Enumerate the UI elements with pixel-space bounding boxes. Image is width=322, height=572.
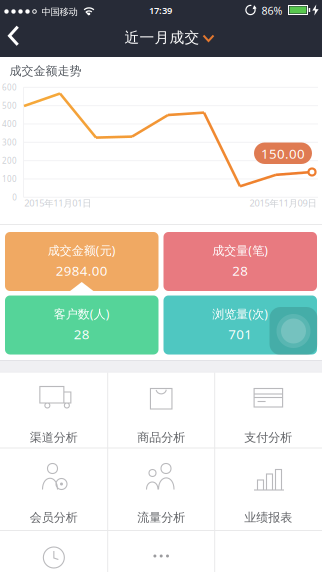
staticText: 600 [2,82,17,93]
staticText: 商品分析 [137,430,185,445]
staticText: 300 [2,137,17,148]
staticText: 中国移动 [41,6,77,18]
button[interactable]: 时段分析 [0,530,108,572]
staticText: 2015年11月01日 [24,197,91,209]
staticText: 28 [232,262,248,279]
button[interactable]: 支付分析 [215,370,322,448]
staticText: 成交金额(元) [48,242,116,258]
button[interactable]: 浏览量(次) [163,295,317,354]
staticText: 0 [12,192,17,203]
staticText: 成交量(笔) [212,242,268,258]
button[interactable]: 渠道分析 [0,370,108,448]
staticText: 渠道分析 [30,430,78,445]
button[interactable]: 商品分析 [108,370,215,448]
staticText: 业绩报表 [244,510,292,525]
staticText: 701 [228,325,252,343]
button[interactable]: 业绩报表 [215,448,322,530]
staticText: 400 [2,119,17,129]
button[interactable]: 客户数(人) [5,295,158,354]
staticText: 200 [2,155,17,166]
staticText: 会员分析 [30,510,78,525]
staticText: 客户数(人) [54,306,110,322]
staticText: 86% [261,3,282,18]
button[interactable]: 会员分析 [0,448,108,530]
button[interactable]: 近一月成交 [106,24,218,51]
staticText: 2984.00 [56,262,108,279]
staticText: 150.00 [261,145,305,162]
button[interactable]: 成交量(笔) [163,232,317,291]
staticText: 近一月成交 [124,28,199,46]
staticText: 成交金额走势 [9,64,81,78]
staticText: 100 [2,174,17,184]
staticText: 流量分析 [137,510,185,525]
staticText: 28 [74,325,90,343]
button[interactable]: AssistiveTouch [269,307,317,355]
button[interactable]: Back [0,0,40,57]
staticText: 17:39 [149,4,172,17]
button[interactable]: 流量分析 [108,448,215,530]
button[interactable]: 更多 [108,530,215,572]
staticText: 500 [2,100,17,111]
staticText: 支付分析 [244,430,292,445]
staticText: 浏览量(次) [212,306,268,322]
button[interactable]: 成交金额(元) [5,232,158,291]
staticText: 2015年11月09日 [249,197,316,209]
